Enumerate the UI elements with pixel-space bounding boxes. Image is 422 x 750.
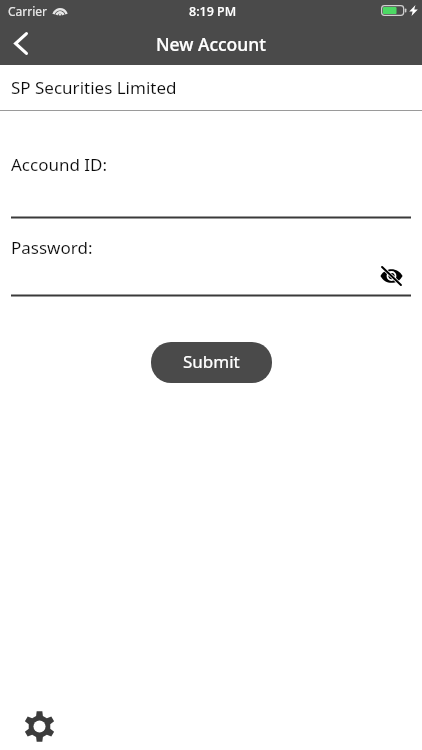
button[interactable]: Settings (18, 705, 60, 747)
button[interactable]: SP Securities Limited (0, 65, 422, 110)
staticText: Submit (183, 350, 240, 373)
staticText: Accound ID: (11, 153, 108, 176)
button[interactable]: Submit (151, 342, 272, 383)
staticText: SP Securities Limited (11, 76, 177, 99)
button[interactable]: Back (0, 22, 41, 65)
staticText: New Account (156, 32, 266, 56)
button[interactable]: Show password (375, 260, 407, 292)
staticText: 8:19 PM (189, 3, 237, 20)
staticText: Password: (11, 236, 93, 259)
staticText: Carrier (8, 3, 48, 19)
